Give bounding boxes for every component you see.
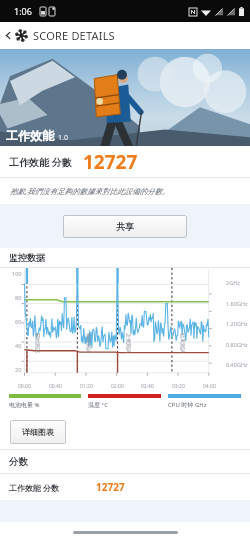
- staticText: 1.0: [58, 133, 68, 143]
- staticText: 02:40: [141, 383, 154, 390]
- staticText: 12727: [96, 480, 125, 494]
- staticText: 00:00: [18, 383, 31, 390]
- staticText: 80: [15, 294, 22, 301]
- staticText: 工作效能 分數: [9, 155, 72, 169]
- staticText: 1:06: [14, 5, 32, 17]
- staticText: 02:00: [111, 383, 124, 390]
- button[interactable]: 工作效能 分数: [0, 474, 250, 500]
- staticText: 12727: [83, 149, 138, 175]
- staticText: 详细图表: [22, 427, 54, 437]
- staticText: 03:20: [172, 383, 185, 390]
- staticText: 温度 °C: [88, 401, 161, 409]
- staticText: 1.20GHz: [226, 320, 248, 327]
- staticText: 监控数据: [9, 252, 45, 263]
- button[interactable]: 工作效能 分數: [0, 146, 250, 177]
- button[interactable]: 详细图表: [10, 420, 66, 444]
- staticText: 04:00: [203, 383, 216, 390]
- staticText: 0.40GHz: [226, 361, 248, 368]
- staticText: 分数: [9, 456, 28, 468]
- button[interactable]: Back: [2, 29, 15, 42]
- staticText: 1.60GHz: [226, 300, 248, 307]
- staticText: 工作效能: [6, 128, 54, 143]
- staticText: 開始測試: [35, 333, 41, 353]
- staticText: 之後測試: [126, 333, 132, 353]
- staticText: 40: [15, 342, 22, 349]
- staticText: 100: [12, 270, 22, 277]
- staticText: 2GHz: [226, 279, 240, 286]
- staticText: SCORE DETAILS: [33, 28, 115, 43]
- staticText: 20: [15, 366, 22, 373]
- staticText: 00:40: [49, 383, 62, 390]
- staticText: 共享: [116, 221, 134, 232]
- staticText: 效能測試: [86, 333, 92, 353]
- staticText: 01:20: [80, 383, 93, 390]
- staticText: 抱歉,我們沒有足夠的數據來對比此設備的分數。: [10, 186, 170, 196]
- staticText: 60: [15, 318, 22, 325]
- button[interactable]: 共享: [63, 215, 187, 238]
- staticText: 电池电量 %: [9, 401, 81, 409]
- staticText: 工作效能 分数: [9, 482, 60, 493]
- staticText: CPU 时钟 GHz: [168, 401, 241, 409]
- staticText: 0.80GHz: [226, 341, 248, 348]
- staticText: 結束測試: [180, 333, 186, 353]
